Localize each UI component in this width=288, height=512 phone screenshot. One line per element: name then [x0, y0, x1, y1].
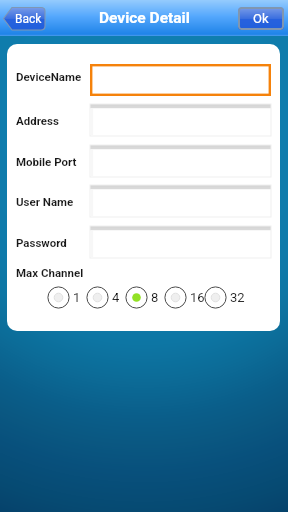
staticText: Address — [16, 114, 59, 127]
staticText: 32 — [230, 290, 245, 305]
button[interactable]: Back — [3, 7, 45, 30]
button[interactable] — [90, 226, 271, 258]
staticText: 1 — [73, 290, 81, 305]
button[interactable]: 32 — [204, 286, 239, 309]
staticText: Mobile Port — [16, 155, 77, 168]
button[interactable]: Ok — [238, 7, 284, 30]
staticText: Max Channel — [16, 266, 84, 279]
button[interactable] — [90, 64, 271, 96]
staticText: Back — [15, 12, 42, 26]
button[interactable]: 1 — [47, 286, 82, 309]
staticText: Device Detail — [99, 9, 190, 27]
staticText: 4 — [112, 290, 120, 305]
staticText: Password — [16, 236, 67, 249]
button[interactable] — [90, 185, 271, 217]
staticText: DeviceName — [16, 70, 82, 83]
button[interactable]: 8 — [125, 286, 160, 309]
button[interactable] — [90, 145, 271, 177]
button[interactable] — [90, 104, 271, 136]
staticText: Ok — [253, 11, 269, 26]
button[interactable]: 4 — [86, 286, 121, 309]
staticText: 8 — [151, 290, 159, 305]
button[interactable]: 16 — [164, 286, 199, 309]
staticText: 16 — [190, 290, 205, 305]
staticText: User Name — [16, 195, 74, 208]
